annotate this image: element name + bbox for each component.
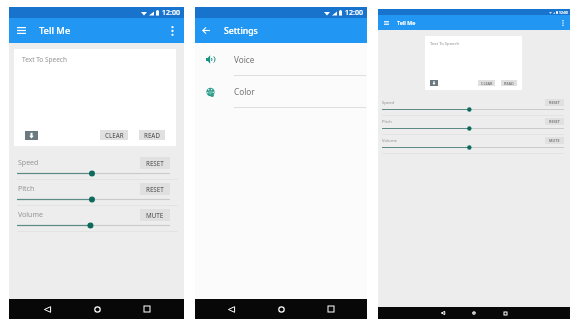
staticText: RESET <box>549 119 560 124</box>
button[interactable]: Recent apps <box>139 301 155 317</box>
staticText: Settings <box>224 25 258 37</box>
staticText: MUTE <box>549 138 560 143</box>
staticText: Text To Speech <box>430 41 459 47</box>
button[interactable] <box>382 106 564 113</box>
button[interactable] <box>382 144 564 151</box>
staticText: READ <box>504 81 514 86</box>
button[interactable]: Home <box>469 308 479 318</box>
staticText: Pitch <box>18 184 35 194</box>
button[interactable]: CLEAR <box>478 80 495 86</box>
button[interactable]: More options <box>164 22 181 39</box>
staticText: Voice <box>234 54 255 65</box>
staticText: 12:00 <box>559 10 568 15</box>
staticText: RESET <box>146 185 164 193</box>
button[interactable]: RESET <box>140 183 170 195</box>
button[interactable]: Navigate up <box>197 22 214 39</box>
button[interactable]: Back <box>438 308 448 318</box>
button[interactable] <box>17 169 170 178</box>
staticText: Speed <box>382 100 395 106</box>
button[interactable]: Recent apps <box>323 301 339 317</box>
staticText: Pitch <box>382 119 392 125</box>
staticText: Text To Speech <box>22 55 67 64</box>
button[interactable] <box>17 195 170 204</box>
staticText: Volume <box>18 210 43 220</box>
button[interactable]: Home <box>89 301 105 317</box>
staticText: Speed <box>18 158 39 168</box>
button[interactable]: Back <box>39 301 55 317</box>
button[interactable] <box>17 221 170 230</box>
button[interactable]: RESET <box>140 157 170 169</box>
button[interactable]: More options <box>558 18 568 28</box>
button[interactable]: MUTE <box>140 209 170 221</box>
button[interactable]: Voice <box>195 44 367 75</box>
button[interactable]: READ <box>139 130 165 140</box>
button[interactable]: Open navigation drawer <box>13 22 30 39</box>
staticText: READ <box>144 131 160 139</box>
staticText: MUTE <box>146 211 164 219</box>
button[interactable]: Save to file <box>430 80 438 86</box>
staticText: Tell Me <box>397 19 416 26</box>
button[interactable]: RESET <box>545 99 564 106</box>
staticText: RESET <box>146 159 164 167</box>
button[interactable]: Back <box>223 301 239 317</box>
button[interactable]: Home <box>273 301 289 317</box>
staticText: CLEAR <box>105 131 124 139</box>
staticText: Tell Me <box>39 24 71 37</box>
button[interactable]: CLEAR <box>100 130 128 140</box>
button[interactable]: Color <box>195 76 367 107</box>
staticText: CLEAR <box>481 81 493 86</box>
button[interactable]: Open navigation drawer <box>381 18 391 28</box>
button[interactable]: RESET <box>545 118 564 125</box>
staticText: 12:00 <box>345 8 363 18</box>
staticText: 12:00 <box>162 8 180 18</box>
staticText: RESET <box>549 100 560 105</box>
button[interactable]: Recent apps <box>500 308 510 318</box>
button[interactable]: MUTE <box>545 137 564 144</box>
button[interactable] <box>382 125 564 132</box>
staticText: Color <box>234 86 255 97</box>
button[interactable]: READ <box>501 80 517 86</box>
staticText: Volume <box>382 138 397 144</box>
button[interactable]: Save to file <box>25 131 38 140</box>
